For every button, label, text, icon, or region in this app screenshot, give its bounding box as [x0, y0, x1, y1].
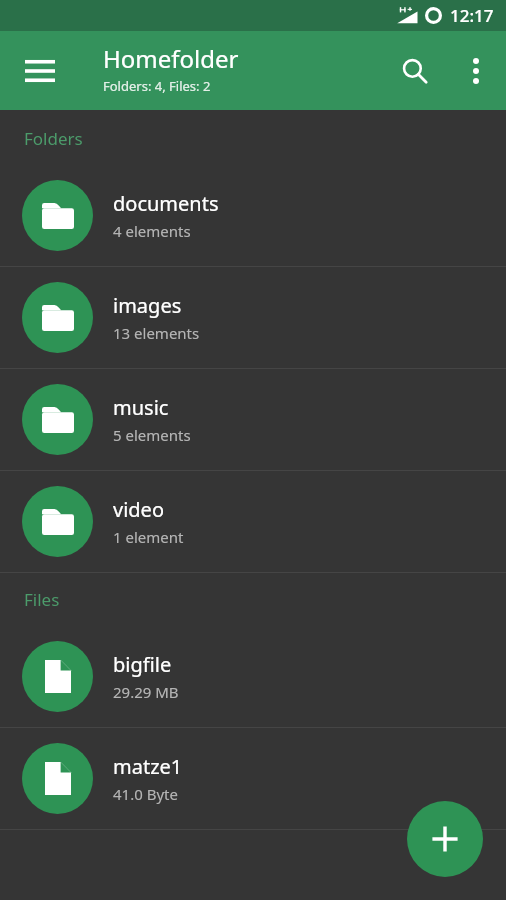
staticText: 12:17: [450, 4, 494, 27]
staticText: bigfile: [113, 651, 172, 678]
staticText: matze1: [113, 753, 183, 780]
button[interactable]: documents: [0, 165, 506, 266]
staticText: Homefolder: [103, 42, 239, 75]
button[interactable]: Open navigation drawer: [10, 41, 70, 101]
staticText: Folders: [24, 127, 83, 150]
button[interactable]: matze1: [0, 728, 506, 829]
staticText: video: [113, 496, 164, 523]
staticText: documents: [113, 190, 219, 217]
staticText: Folders: 4, Files: 2: [103, 77, 211, 95]
staticText: Files: [24, 588, 60, 611]
button[interactable]: Add: [407, 801, 483, 877]
staticText: 4 elements: [113, 221, 191, 241]
staticText: 29.29 MB: [113, 682, 179, 702]
button[interactable]: music: [0, 369, 506, 470]
staticText: music: [113, 394, 169, 421]
button[interactable]: More options: [450, 45, 502, 97]
button[interactable]: bigfile: [0, 626, 506, 727]
staticText: 41.0 Byte: [113, 784, 178, 804]
staticText: 1 element: [113, 527, 184, 547]
button[interactable]: Search: [387, 43, 443, 99]
button[interactable]: images: [0, 267, 506, 368]
staticText: images: [113, 292, 182, 319]
button[interactable]: video: [0, 471, 506, 572]
staticText: 13 elements: [113, 323, 200, 343]
staticText: 5 elements: [113, 425, 191, 445]
